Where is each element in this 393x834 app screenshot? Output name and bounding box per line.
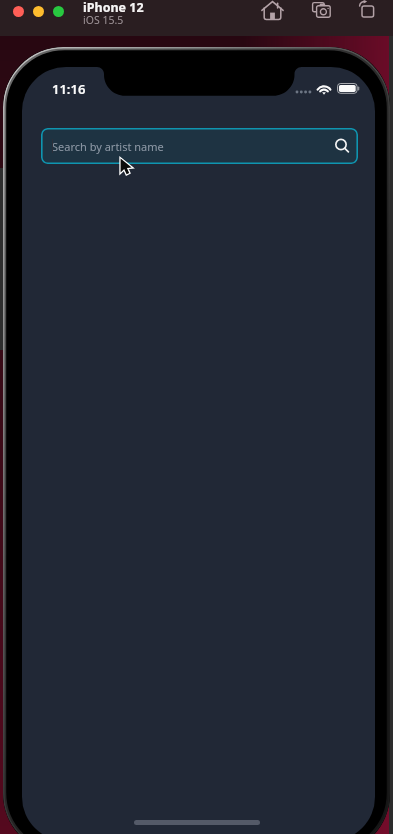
staticText: 11:16 [52, 80, 86, 98]
button[interactable]: Close [13, 6, 24, 17]
staticText: Search by artist name [52, 139, 164, 154]
button[interactable]: Screenshot [310, 0, 333, 23]
button[interactable]: Share [357, 0, 380, 23]
button[interactable]: Home [261, 0, 284, 23]
button[interactable]: Maximize [53, 6, 64, 17]
staticText: iOS 15.5 [83, 13, 124, 27]
button[interactable]: Minimize [33, 6, 44, 17]
button[interactable]: Search by artist name [41, 128, 358, 164]
staticText: iPhone 12 [83, 0, 144, 16]
